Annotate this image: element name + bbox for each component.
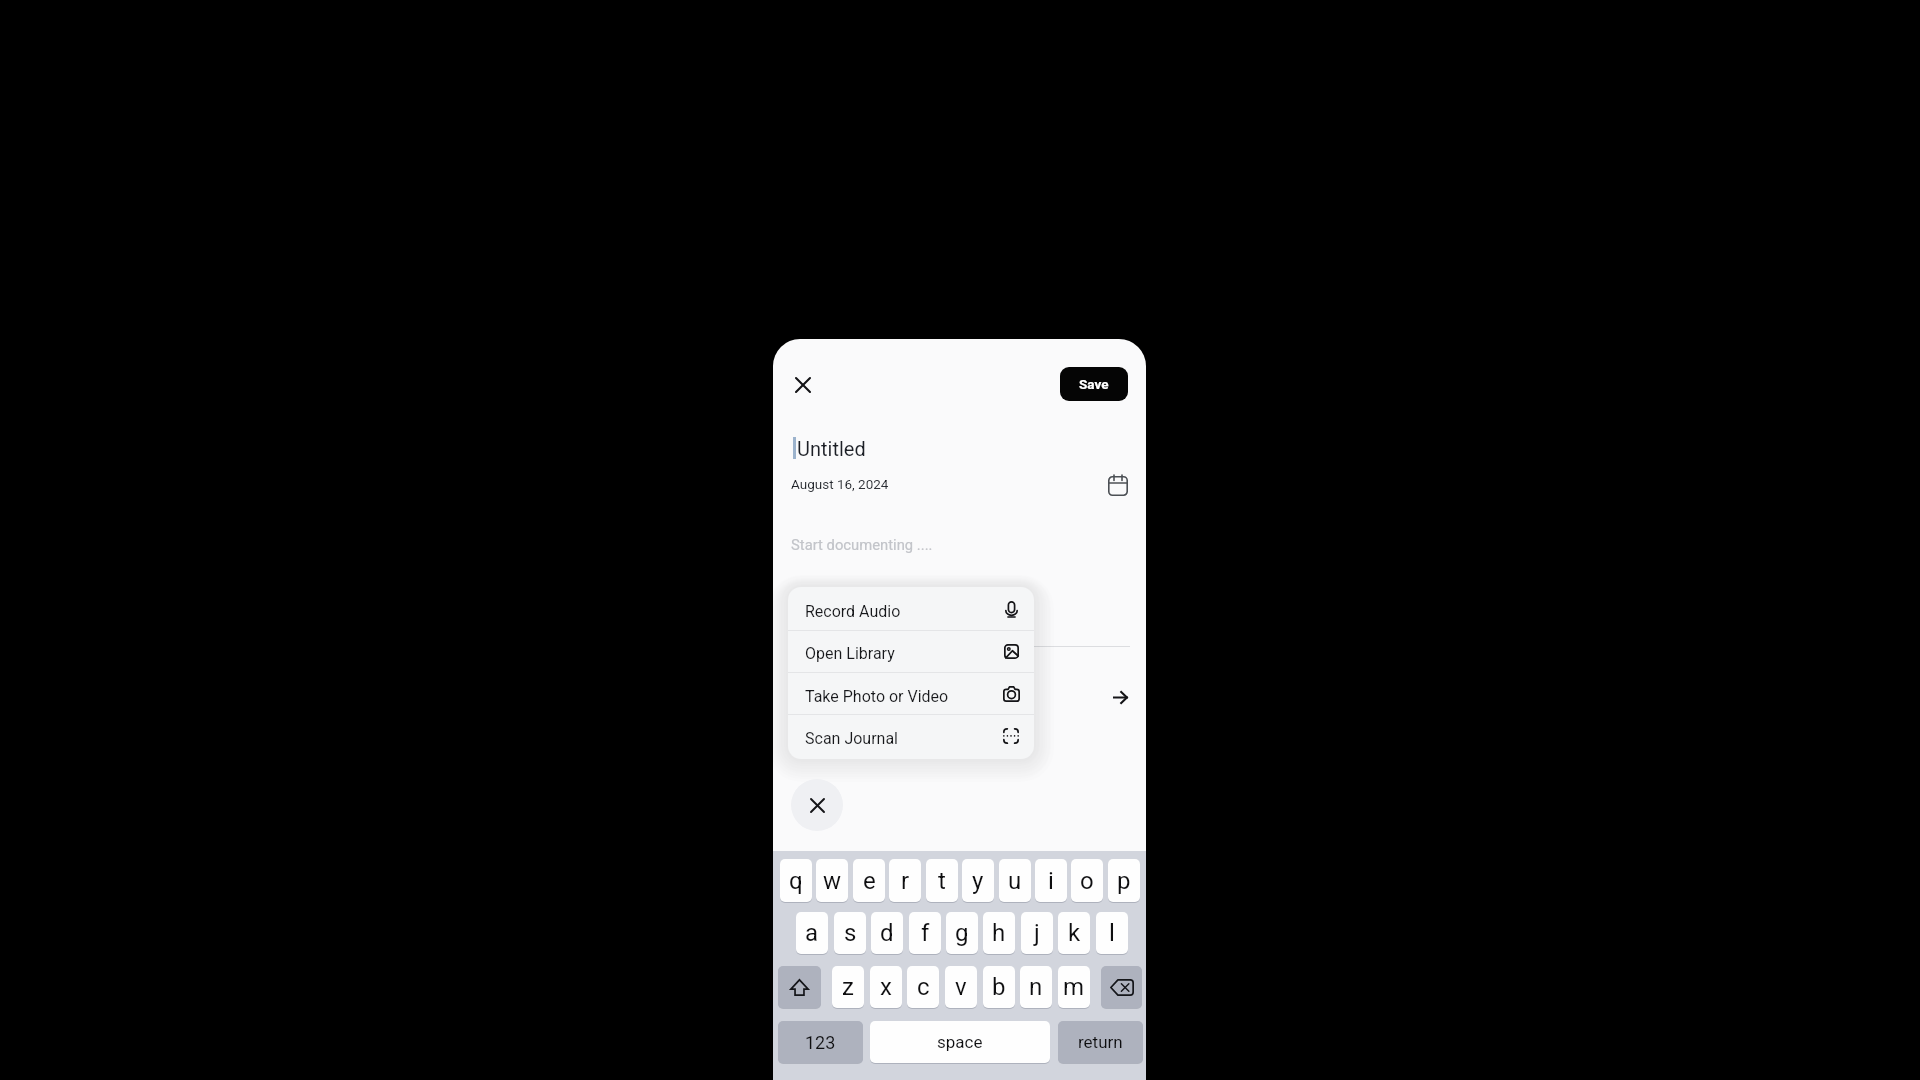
staticText: s: [844, 919, 857, 947]
button[interactable]: u: [999, 859, 1031, 902]
staticText: Take Photo or Video: [805, 687, 949, 706]
button[interactable]: g: [946, 912, 978, 954]
button[interactable]: Scan Journal: [788, 715, 1034, 758]
staticText: y: [972, 867, 984, 895]
staticText: i: [1048, 867, 1054, 895]
button[interactable]: b: [983, 966, 1015, 1008]
staticText: Open Library: [805, 644, 895, 663]
staticText: c: [917, 973, 930, 1001]
staticText: a: [805, 919, 819, 947]
staticText: u: [1008, 867, 1022, 895]
staticText: v: [955, 973, 967, 1001]
staticText: n: [1029, 973, 1043, 1001]
button[interactable]: Record Audio: [788, 588, 1034, 631]
button[interactable]: r: [889, 859, 921, 902]
staticText: q: [789, 867, 803, 895]
button[interactable]: Dismiss menu: [791, 779, 843, 831]
button[interactable]: space: [870, 1021, 1050, 1063]
button[interactable]: o: [1071, 859, 1103, 902]
staticText: z: [842, 973, 854, 1001]
staticText: b: [992, 973, 1006, 1001]
button[interactable]: Open Library: [788, 630, 1034, 673]
staticText: space: [937, 1032, 983, 1052]
button[interactable]: i: [1035, 859, 1067, 902]
button[interactable]: j: [1021, 912, 1053, 954]
button[interactable]: f: [909, 912, 941, 954]
staticText: Save: [1079, 376, 1109, 392]
staticText: Untitled: [797, 437, 866, 460]
button[interactable]: Next: [1108, 685, 1132, 709]
staticText: Scan Journal: [805, 729, 899, 748]
staticText: g: [955, 919, 969, 947]
button[interactable]: l: [1096, 912, 1128, 954]
button[interactable]: return: [1058, 1021, 1143, 1063]
staticText: August 16, 2024: [791, 476, 889, 492]
staticText: w: [823, 867, 842, 895]
button[interactable]: v: [945, 966, 977, 1008]
staticText: Start documenting ....: [791, 536, 933, 553]
staticText: r: [901, 867, 910, 895]
button[interactable]: Backspace: [1101, 966, 1142, 1008]
button[interactable]: n: [1020, 966, 1052, 1008]
button[interactable]: x: [870, 966, 902, 1008]
button[interactable]: Pick date: [1104, 471, 1132, 499]
button[interactable]: a: [796, 912, 828, 954]
button[interactable]: c: [907, 966, 939, 1008]
button[interactable]: d: [871, 912, 903, 954]
button[interactable]: Shift: [778, 966, 821, 1008]
button[interactable]: m: [1058, 966, 1090, 1008]
staticText: x: [880, 973, 892, 1001]
staticText: m: [1063, 973, 1085, 1001]
button[interactable]: p: [1108, 859, 1140, 902]
button[interactable]: h: [983, 912, 1015, 954]
staticText: l: [1109, 919, 1115, 947]
button[interactable]: z: [832, 966, 864, 1008]
staticText: k: [1068, 919, 1081, 947]
button[interactable]: Take Photo or Video: [788, 673, 1034, 716]
staticText: j: [1034, 919, 1040, 947]
button[interactable]: e: [853, 859, 885, 902]
button[interactable]: Save: [1060, 367, 1128, 401]
button[interactable]: w: [816, 859, 848, 902]
staticText: e: [863, 867, 876, 895]
staticText: Record Audio: [805, 602, 901, 621]
staticText: o: [1080, 867, 1094, 895]
staticText: f: [921, 919, 930, 947]
staticText: d: [880, 919, 894, 947]
staticText: p: [1117, 867, 1131, 895]
button[interactable]: k: [1058, 912, 1090, 954]
button[interactable]: 123: [778, 1021, 863, 1063]
button[interactable]: t: [926, 859, 958, 902]
staticText: return: [1078, 1032, 1123, 1052]
staticText: h: [992, 919, 1006, 947]
button[interactable]: Close: [786, 368, 820, 402]
staticText: t: [938, 867, 946, 895]
button[interactable]: q: [780, 859, 812, 902]
staticText: 123: [805, 1032, 836, 1053]
button[interactable]: y: [962, 859, 994, 902]
button[interactable]: s: [834, 912, 866, 954]
